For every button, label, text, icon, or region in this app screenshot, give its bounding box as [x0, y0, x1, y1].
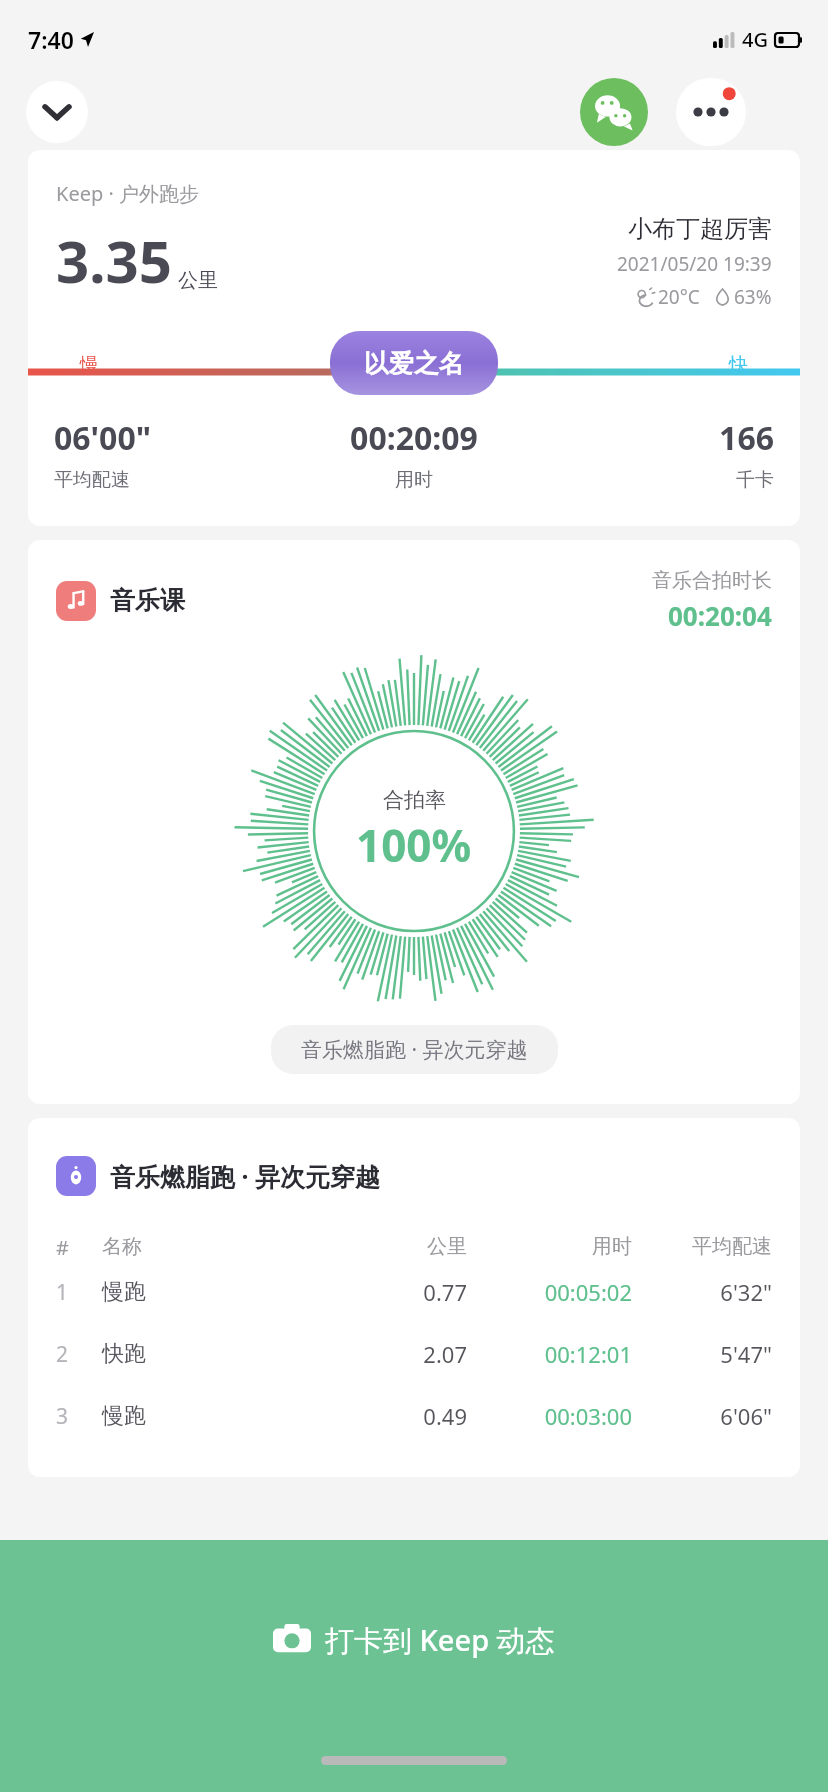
staticText: 音乐燃脂跑 · 异次元穿越 [301, 1035, 528, 1064]
staticText: 公里 [347, 1234, 467, 1259]
staticText: Keep · 户外跑步 [56, 180, 199, 207]
staticText: 打卡到 Keep 动态 [325, 1620, 555, 1660]
staticText: 0.49 [347, 1401, 467, 1431]
staticText: # [56, 1234, 102, 1261]
staticText: 用时 [294, 468, 534, 492]
staticText: 166 [534, 416, 774, 460]
staticText: 00:20:04 [668, 598, 772, 633]
staticText: 4G [742, 26, 768, 53]
staticText: 7:40 [28, 24, 74, 55]
staticText: 6'32" [632, 1277, 772, 1307]
staticText: 以爱之名 [364, 348, 464, 379]
button[interactable]: 以爱之名 [330, 331, 498, 395]
staticText: 快 [729, 353, 748, 377]
staticText: 平均配速 [632, 1234, 772, 1259]
staticText: 3.35 [56, 221, 172, 300]
staticText: 慢 [80, 353, 99, 377]
button[interactable]: Keep · 户外跑步 [28, 150, 800, 526]
staticText: 2.07 [347, 1339, 467, 1369]
staticText: 公里 [178, 268, 218, 293]
staticText: 06'00" [54, 416, 294, 460]
staticText: 慢跑 [102, 1402, 347, 1430]
button[interactable]: Share to WeChat [580, 78, 648, 146]
staticText: 2 [56, 1340, 102, 1369]
staticText: 00:05:02 [467, 1277, 632, 1307]
staticText: 慢跑 [102, 1278, 347, 1306]
staticText: 100% [356, 815, 472, 875]
staticText: 音乐合拍时长 [652, 568, 772, 593]
staticText: 音乐课 [110, 585, 185, 616]
staticText: 00:03:00 [467, 1401, 632, 1431]
button[interactable]: More options [676, 78, 746, 146]
button[interactable]: 打卡到 Keep 动态 [0, 1540, 828, 1740]
staticText: 00:20:09 [294, 416, 534, 460]
staticText: 千卡 [534, 468, 774, 492]
staticText: 0.77 [347, 1277, 467, 1307]
staticText: 63% [734, 284, 772, 310]
staticText: 3 [56, 1402, 102, 1431]
staticText: 合拍率 [383, 787, 446, 813]
staticText: 名称 [102, 1234, 347, 1259]
staticText: 5'47" [632, 1339, 772, 1369]
button[interactable]: 1 [28, 1261, 800, 1323]
staticText: 6'06" [632, 1401, 772, 1431]
staticText: 平均配速 [54, 468, 294, 492]
staticText: 1 [56, 1278, 102, 1307]
button[interactable]: 音乐课 [28, 540, 800, 1104]
button[interactable]: 2 [28, 1323, 800, 1385]
staticText: 00:12:01 [467, 1339, 632, 1369]
button[interactable]: Collapse [26, 81, 88, 143]
staticText: 小布丁超厉害 [628, 214, 772, 244]
staticText: 快跑 [102, 1340, 347, 1368]
button[interactable]: 3 [28, 1385, 800, 1447]
button[interactable]: 音乐燃脂跑 · 异次元穿越 [28, 1118, 800, 1477]
staticText: 音乐燃脂跑 · 异次元穿越 [110, 1159, 381, 1193]
staticText: 20°C [658, 284, 700, 310]
staticText: 用时 [467, 1234, 632, 1259]
button[interactable]: 音乐燃脂跑 · 异次元穿越 [301, 1035, 528, 1064]
staticText: 2021/05/20 19:39 [617, 251, 772, 277]
